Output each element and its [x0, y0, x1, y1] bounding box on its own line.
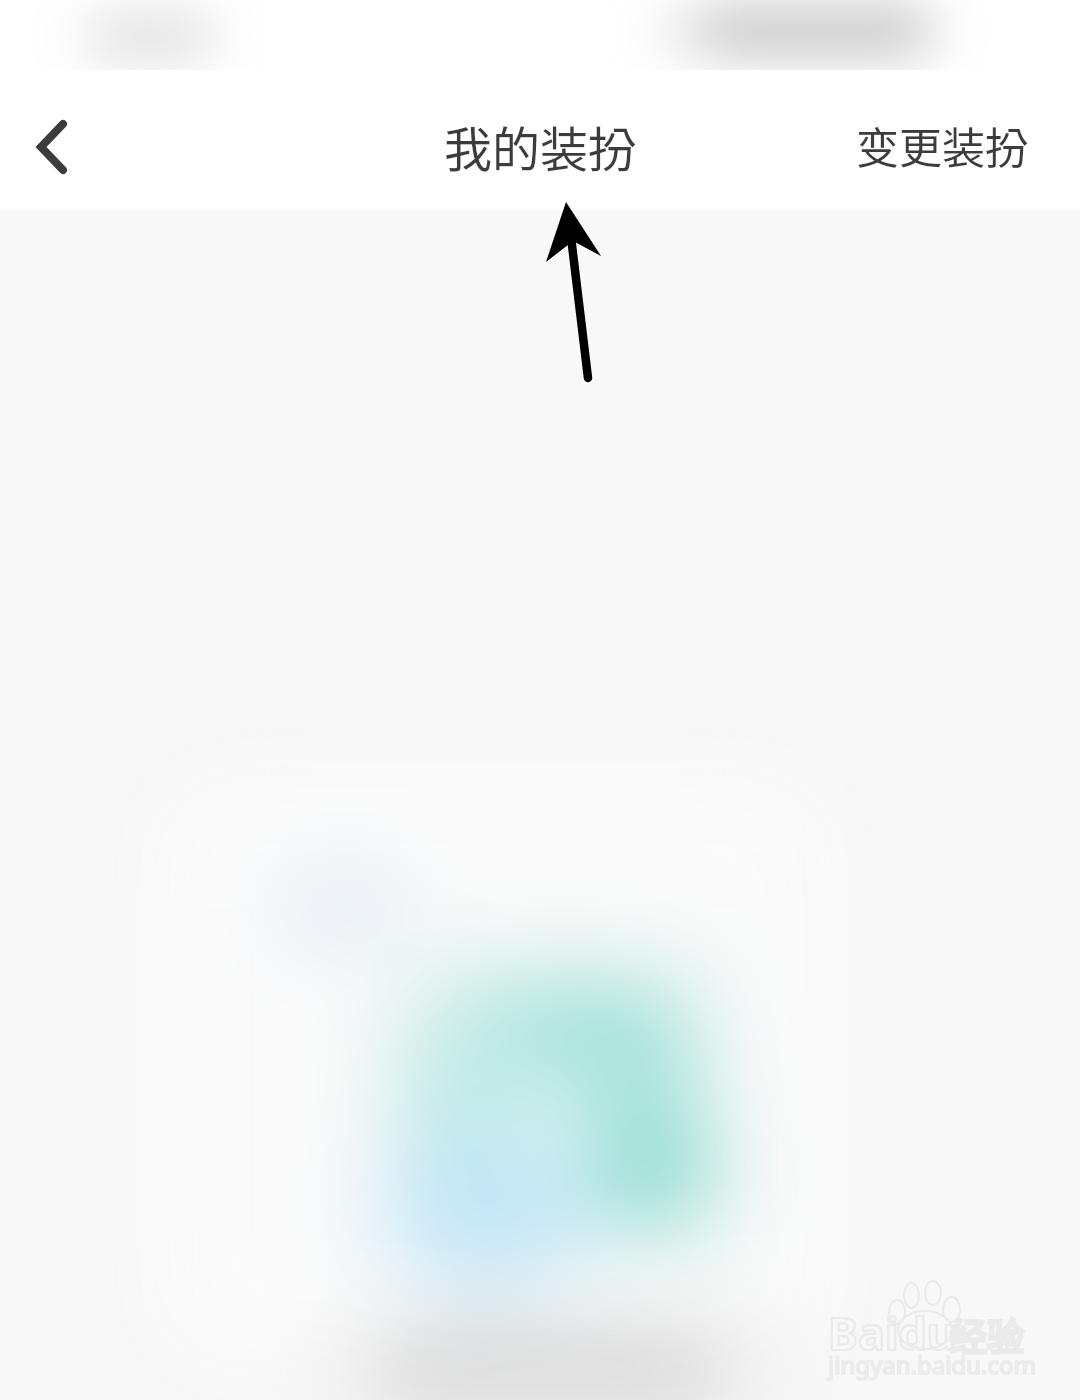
staticText: 我的装扮: [444, 111, 637, 181]
staticText: 变更装扮: [856, 114, 1028, 176]
button[interactable]: Back: [0, 70, 112, 210]
staticText: jingyan.baidu.com: [828, 1348, 1036, 1381]
staticText: 经验: [950, 1308, 1024, 1362]
button[interactable]: 变更装扮: [856, 114, 1028, 176]
staticText: Baidu: [828, 1302, 957, 1363]
